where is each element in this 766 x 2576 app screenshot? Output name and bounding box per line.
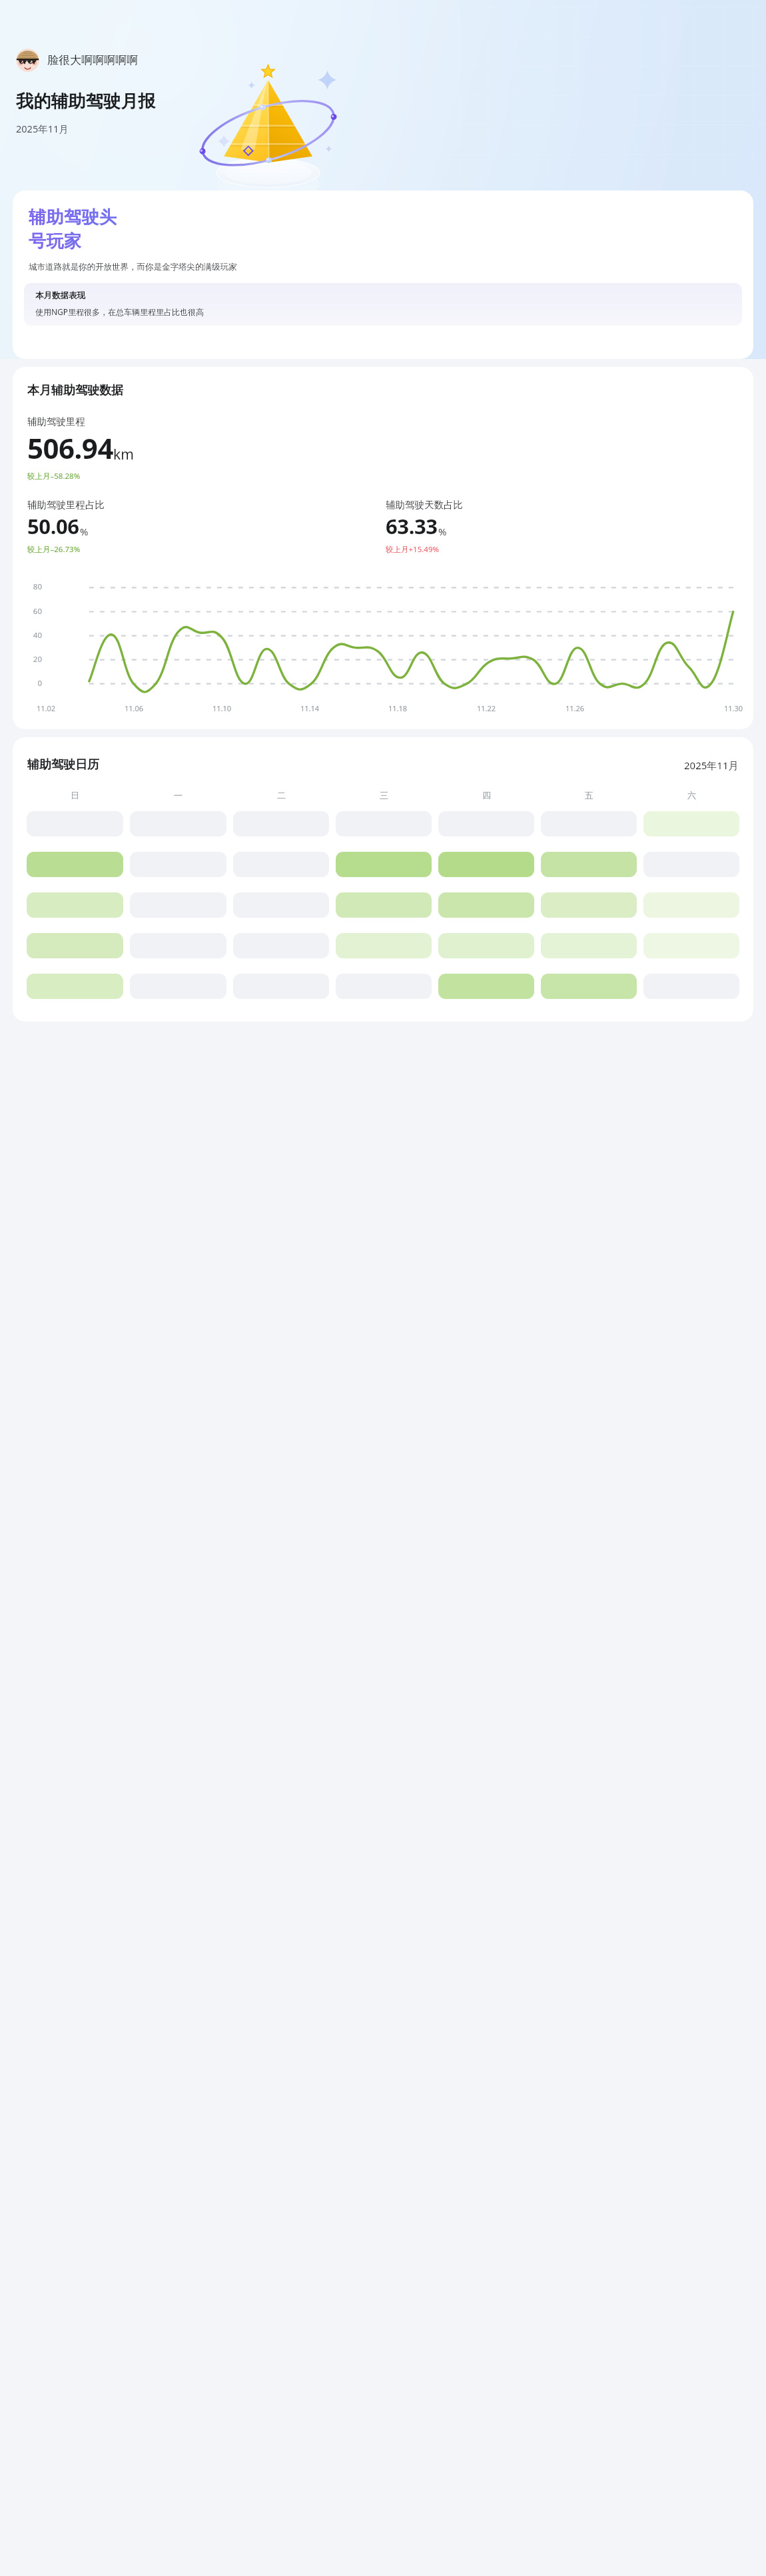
staticText: 11.22 [477,703,566,713]
staticText: 本月辅助驾驶数据 [27,383,123,398]
button[interactable]: 辅助驾驶日历 [13,737,753,1022]
button[interactable] [643,933,739,958]
button[interactable] [27,933,123,958]
button[interactable]: 本月辅助驾驶数据 [13,367,753,729]
staticText: 六 [687,790,696,801]
button[interactable] [541,974,637,999]
staticText: km [113,445,134,464]
button[interactable]: 脸很大啊啊啊啊啊 [16,49,146,72]
button[interactable] [438,892,534,918]
staticText: 11.02 [37,703,125,713]
button[interactable] [233,933,329,958]
staticText: 11.06 [125,703,212,713]
button[interactable] [438,974,534,999]
button[interactable] [541,852,637,877]
button[interactable] [27,892,123,918]
button[interactable] [27,852,123,877]
staticText: 辅助驾驶里程 [27,416,85,428]
button[interactable] [336,892,432,918]
staticText: 11.18 [388,703,477,713]
staticText: 506.94 [27,429,113,467]
staticText: 40 [22,630,42,641]
button[interactable] [27,974,123,999]
button[interactable] [438,811,534,836]
staticText: 辅助驾驶头 [29,206,117,228]
staticText: 50.06 [27,512,79,540]
staticText: 四 [482,790,491,801]
staticText: % [80,525,89,538]
staticText: 辅助驾驶日历 [27,757,99,773]
staticText: 城市道路就是你的开放世界，而你是金字塔尖的满级玩家 [29,262,237,272]
button[interactable]: 本月数据表现 [24,283,742,326]
staticText: 辅助驾驶里程占比 [27,499,105,511]
staticText: 11.30 [654,703,743,713]
button[interactable] [336,852,432,877]
staticText: 日 [71,790,79,801]
staticText: 11.26 [566,703,654,713]
staticText: 辅助驾驶天数占比 [386,499,463,511]
staticText: 11.10 [212,703,300,713]
button[interactable] [438,933,534,958]
staticText: 较上月–58.28% [27,471,81,482]
staticText: 2025年11月 [684,759,739,772]
staticText: 脸很大啊啊啊啊啊 [47,53,138,67]
button[interactable]: 辅助驾驶天数占比 [386,499,753,555]
staticText: 较上月+15.49% [386,544,440,555]
staticText: 三 [380,790,388,801]
button[interactable] [643,811,739,836]
staticText: 我的辅助驾驶月报 [16,91,156,113]
staticText: % [438,525,447,538]
staticText: 较上月–26.73% [27,544,81,555]
staticText: 本月数据表现 [35,290,85,301]
staticText: 一 [174,790,183,801]
button[interactable] [233,811,329,836]
button[interactable] [233,892,329,918]
staticText: 0 [22,678,42,689]
staticText: 11.14 [300,703,388,713]
button[interactable]: 辅助驾驶里程占比 [27,499,383,555]
button[interactable] [438,852,534,877]
button[interactable] [541,933,637,958]
staticText: 20 [22,654,42,665]
button[interactable]: 辅助驾驶头 [13,190,753,359]
staticText: 号玩家 [29,230,82,252]
staticText: 2025年11月 [16,122,69,135]
button[interactable] [541,892,637,918]
staticText: 五 [585,790,593,801]
staticText: 63.33 [386,512,438,540]
button[interactable] [643,892,739,918]
staticText: 80 [22,581,42,592]
button[interactable] [336,933,432,958]
staticText: 60 [22,606,42,617]
staticText: 二 [277,790,286,801]
staticText: 使用NGP里程很多，在总车辆里程里占比也很高 [35,306,204,317]
